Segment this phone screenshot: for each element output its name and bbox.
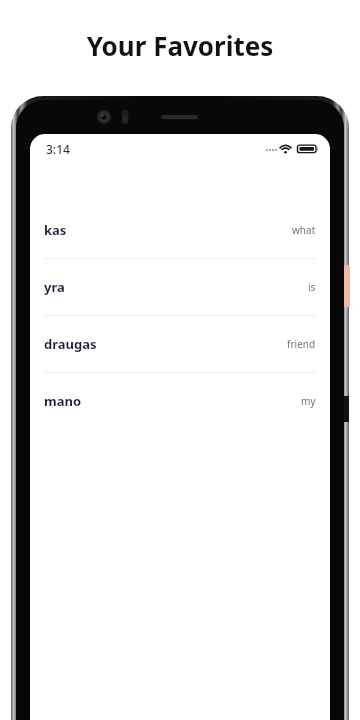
staticText: my <box>301 394 316 408</box>
staticText: friend <box>287 337 316 351</box>
staticText: Your Favorites <box>0 28 360 63</box>
button[interactable]: mano <box>30 373 330 429</box>
button[interactable]: draugas <box>30 316 330 372</box>
staticText: what <box>292 223 316 237</box>
staticText: 3:14 <box>46 141 70 157</box>
staticText: draugas <box>44 335 97 353</box>
staticText: yra <box>44 278 65 296</box>
other: Status icons <box>266 142 318 156</box>
button[interactable]: yra <box>30 259 330 315</box>
button[interactable]: kas <box>30 202 330 258</box>
staticText: mano <box>44 392 82 410</box>
staticText: is <box>308 280 316 294</box>
staticText: kas <box>44 221 67 239</box>
